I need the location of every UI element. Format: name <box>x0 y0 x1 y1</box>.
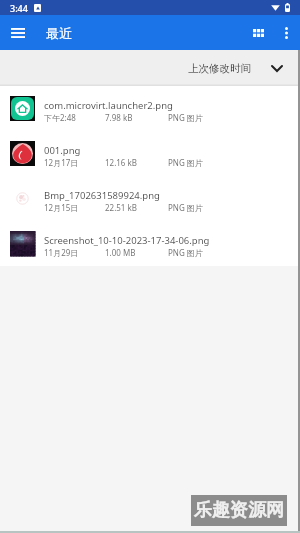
staticText: PNG 图片 <box>168 157 203 168</box>
button[interactable]: 001.png <box>0 131 300 176</box>
button[interactable]: Screenshot_10-10-2023-17-34-06.png <box>0 221 300 266</box>
staticText: PNG 图片 <box>168 112 203 123</box>
staticText: 001.png <box>44 144 81 157</box>
button[interactable]: More options <box>273 15 300 50</box>
staticText: 上次修改时间 <box>188 62 251 75</box>
staticText: 11月29日 <box>44 247 79 258</box>
staticText: Screenshot_10-10-2023-17-34-06.png <box>44 234 210 247</box>
staticText: PNG 图片 <box>168 247 203 258</box>
staticText: com.microvirt.launcher2.png <box>44 99 173 112</box>
staticText: 12月15日 <box>44 202 79 213</box>
staticText: 最近 <box>46 25 72 41</box>
staticText: Bmp_1702631589924.png <box>44 189 160 202</box>
staticText: 12.16 kB <box>105 157 137 168</box>
staticText: 1.00 MB <box>105 247 136 258</box>
button[interactable]: Grid view <box>243 15 273 50</box>
staticText: 12月17日 <box>44 157 79 168</box>
button[interactable]: Bmp_1702631589924.png <box>0 176 300 221</box>
button[interactable]: 上次修改时间 <box>176 50 300 86</box>
staticText: 7.98 kB <box>105 112 133 123</box>
staticText: 3:44 <box>10 2 28 14</box>
staticText: 下午2:48 <box>44 112 76 123</box>
staticText: 乐趣资源网 <box>194 499 284 522</box>
staticText: PNG 图片 <box>168 202 203 213</box>
button[interactable]: Open navigation drawer <box>0 15 36 50</box>
staticText: 22.51 kB <box>105 202 137 213</box>
button[interactable]: com.microvirt.launcher2.png <box>0 86 300 131</box>
